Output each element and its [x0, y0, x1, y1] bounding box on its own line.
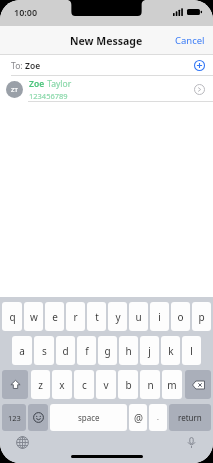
staticText: m [167, 378, 177, 392]
staticText: 10:00 [14, 6, 38, 18]
staticText: j [148, 344, 151, 358]
button[interactable]: v [96, 370, 116, 399]
button[interactable]: a [12, 336, 32, 365]
button[interactable]: u [129, 302, 148, 331]
button[interactable]: t [87, 302, 106, 331]
staticText: ZT [11, 86, 18, 94]
button[interactable]: return [169, 404, 211, 431]
button[interactable]: Change keyboard language [14, 434, 30, 450]
button[interactable]: l [182, 336, 201, 365]
button[interactable]: s [34, 336, 54, 365]
staticText: New Message [70, 34, 143, 48]
button[interactable]: n [140, 370, 160, 399]
staticText: Taylor [45, 78, 72, 90]
button[interactable]: k [161, 336, 180, 365]
staticText: To: [11, 60, 25, 72]
staticText: t [95, 310, 99, 324]
button[interactable]: r [66, 302, 85, 331]
button[interactable]: . [149, 404, 167, 431]
button[interactable]: Cancel [167, 28, 213, 53]
button[interactable]: Dictate [183, 434, 199, 450]
button[interactable]: i [150, 302, 169, 331]
button[interactable]: e [45, 302, 64, 331]
staticText: h [125, 344, 132, 358]
button[interactable]: Emoji [28, 404, 48, 431]
button[interactable]: y [108, 302, 127, 331]
button[interactable]: ZT [0, 76, 213, 102]
staticText: d [62, 344, 69, 358]
staticText: return [178, 412, 202, 423]
staticText: k [168, 344, 174, 358]
button[interactable]: b [118, 370, 138, 399]
staticText: c [82, 378, 87, 392]
staticText: r [73, 310, 78, 324]
staticText: x [59, 378, 65, 392]
button[interactable]: o [171, 302, 190, 331]
button[interactable]: w [24, 302, 43, 331]
staticText: space [78, 412, 100, 423]
button[interactable]: d [56, 336, 75, 365]
button[interactable]: h [119, 336, 138, 365]
staticText: y [115, 310, 121, 324]
button[interactable]: z [31, 370, 50, 399]
button[interactable]: Add contact [191, 57, 208, 74]
staticText: a [19, 344, 25, 358]
button[interactable]: 123 [2, 404, 26, 431]
staticText: f [85, 344, 89, 358]
staticText: u [135, 310, 142, 324]
button[interactable]: m [162, 370, 182, 399]
staticText: n [147, 378, 154, 392]
staticText: Cancel [175, 34, 205, 47]
button[interactable]: q [2, 302, 22, 331]
staticText: o [177, 310, 184, 324]
staticText: q [9, 310, 16, 324]
staticText: l [190, 344, 193, 358]
staticText: @ [134, 411, 143, 425]
button[interactable]: p [192, 302, 211, 331]
button[interactable]: g [98, 336, 117, 365]
button[interactable]: Backspace [185, 370, 211, 399]
staticText: p [198, 310, 205, 324]
staticText: 123456789 [29, 91, 68, 101]
button[interactable]: c [74, 370, 94, 399]
staticText: e [52, 310, 58, 324]
button[interactable]: f [77, 336, 96, 365]
staticText: Zoe [25, 60, 41, 72]
button[interactable]: space [50, 404, 127, 431]
staticText: i [158, 310, 161, 324]
button[interactable]: Shift [2, 370, 28, 399]
button[interactable]: Contact details [191, 81, 208, 98]
staticText: z [38, 378, 43, 392]
staticText: g [104, 344, 111, 358]
button[interactable]: x [52, 370, 72, 399]
staticText: Zoe [29, 78, 45, 90]
button[interactable]: j [140, 336, 159, 365]
staticText: v [103, 378, 109, 392]
staticText: w [30, 310, 38, 324]
staticText: s [42, 344, 47, 358]
button[interactable]: @ [129, 404, 147, 431]
staticText: . [157, 413, 159, 423]
staticText: 123 [8, 413, 21, 423]
staticText: b [125, 378, 132, 392]
